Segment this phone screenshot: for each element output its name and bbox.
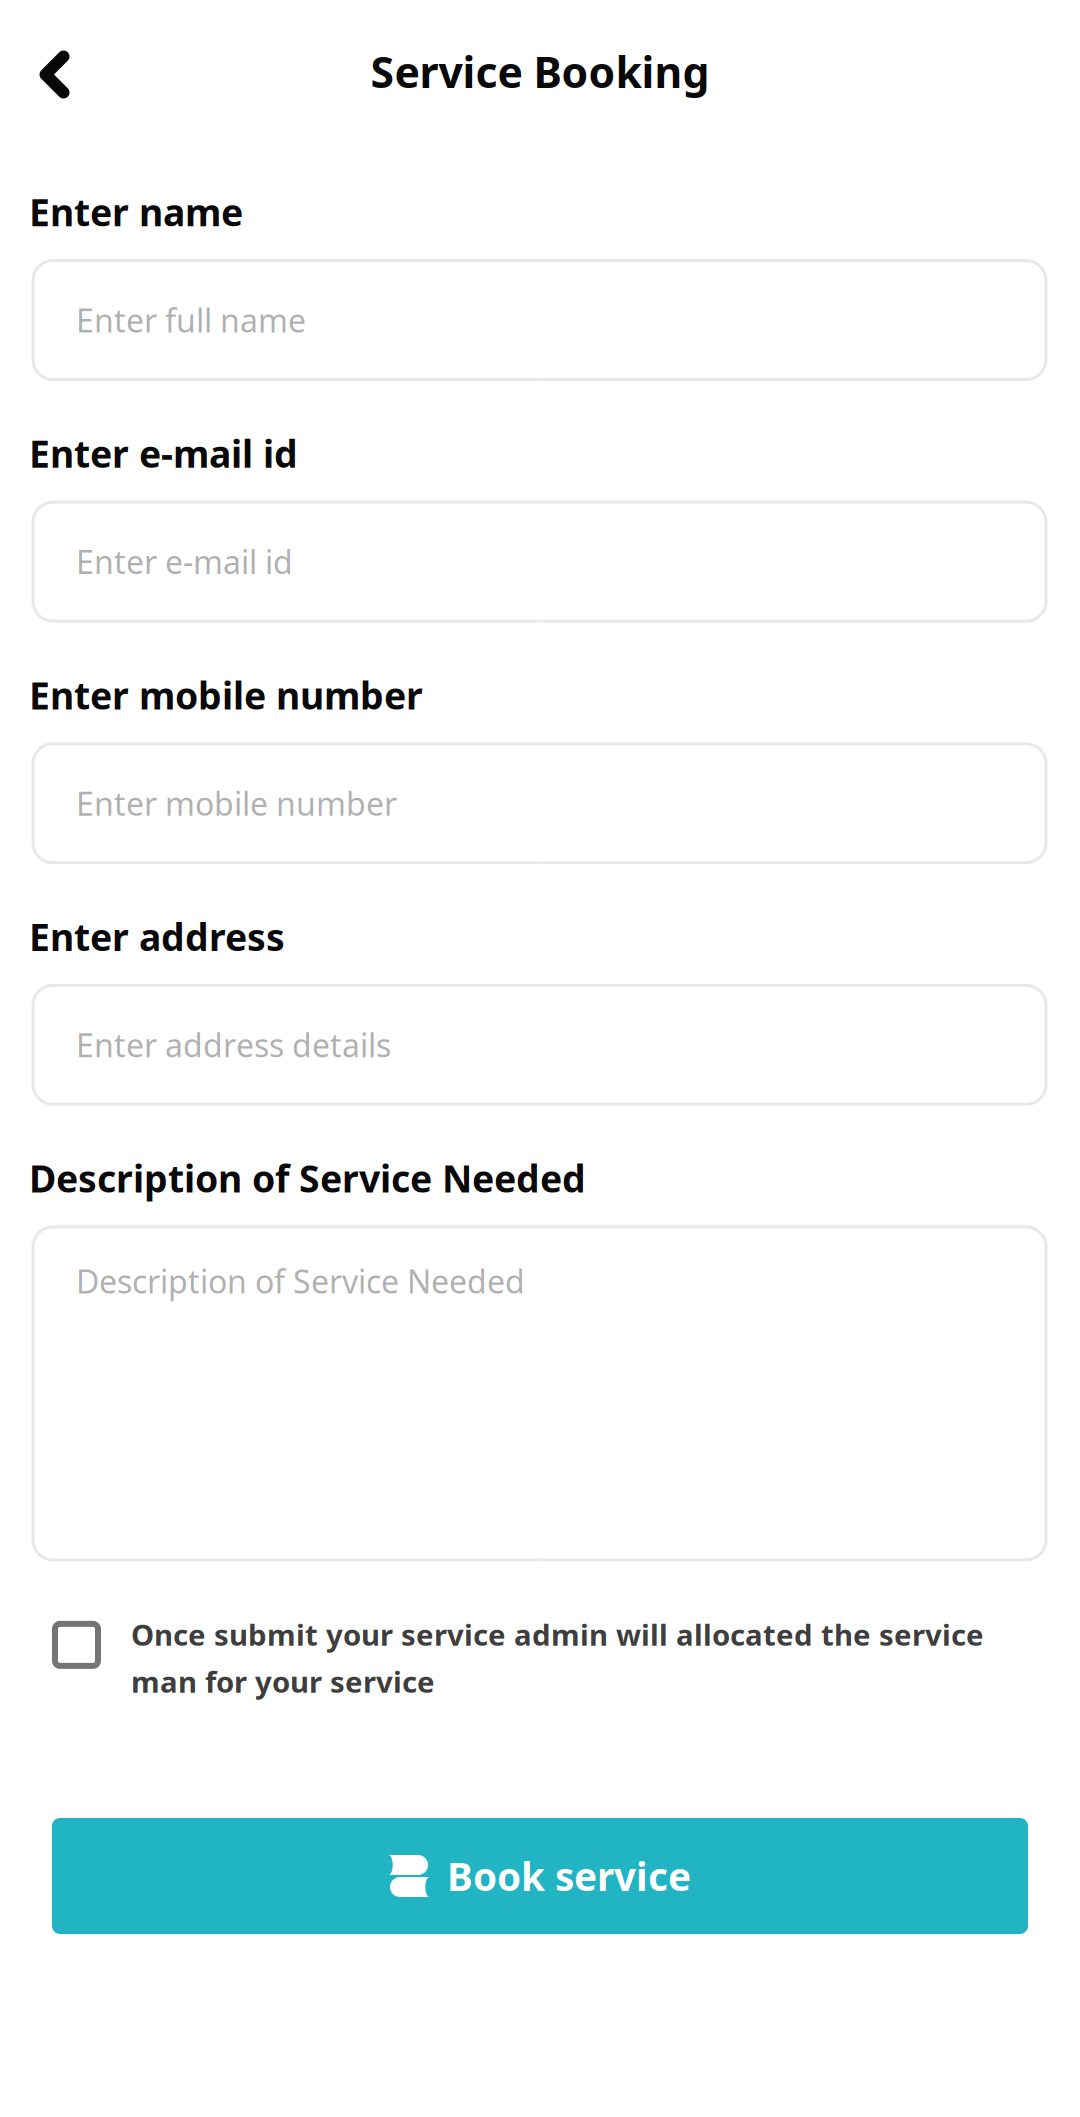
button[interactable]: Book service bbox=[52, 1818, 1028, 1934]
button[interactable]: Enter e-mail id bbox=[33, 502, 1046, 621]
staticText: Enter mobile number bbox=[76, 782, 397, 824]
staticText: Enter address details bbox=[76, 1024, 391, 1066]
button[interactable]: Once submit your service admin will allo… bbox=[33, 1615, 1046, 1701]
button[interactable]: Back bbox=[11, 29, 99, 157]
staticText: Enter e-mail id bbox=[29, 429, 298, 478]
staticText: Enter full name bbox=[76, 299, 306, 341]
staticText: Enter name bbox=[29, 187, 243, 237]
button[interactable]: Enter mobile number bbox=[33, 744, 1046, 863]
staticText: Once submit your service admin will allo… bbox=[131, 1615, 984, 1654]
staticText: Description of Service Needed bbox=[29, 1153, 586, 1203]
staticText: Enter e-mail id bbox=[76, 540, 293, 583]
button[interactable]: Description of Service Needed bbox=[33, 1227, 1046, 1560]
button[interactable]: Enter full name bbox=[33, 261, 1046, 380]
staticText: Book service bbox=[447, 1850, 691, 1902]
staticText: Enter address bbox=[29, 912, 285, 961]
staticText: man for your service bbox=[131, 1662, 435, 1701]
button[interactable]: Enter address details bbox=[33, 985, 1046, 1104]
staticText: Description of Service Needed bbox=[76, 1260, 525, 1302]
staticText: Enter mobile number bbox=[29, 670, 423, 720]
staticText: Service Booking bbox=[370, 43, 709, 100]
